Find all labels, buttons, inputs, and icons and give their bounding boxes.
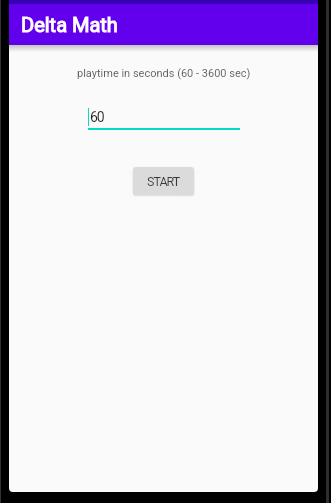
button[interactable]: START bbox=[133, 167, 194, 195]
staticText: playtime in seconds (60 - 3600 sec) bbox=[77, 67, 251, 80]
button[interactable]: 60 bbox=[88, 104, 240, 130]
staticText: START bbox=[147, 174, 180, 189]
staticText: 60 bbox=[90, 109, 104, 125]
staticText: Delta Math bbox=[21, 13, 118, 36]
